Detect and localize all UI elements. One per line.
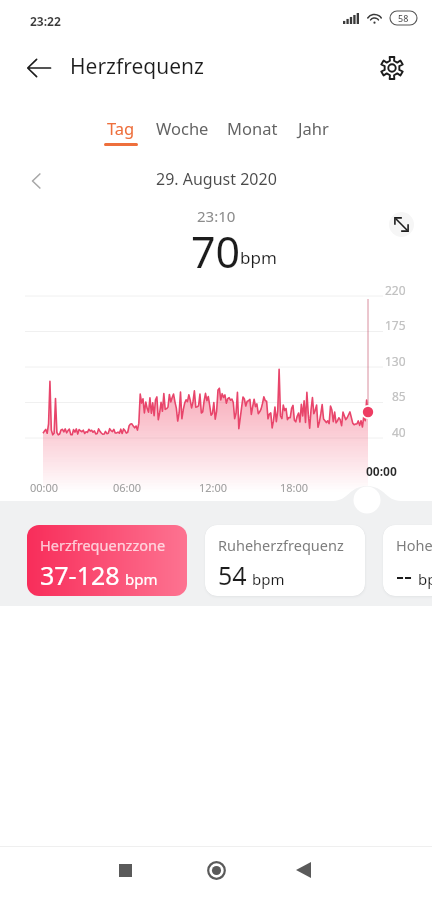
button[interactable]: Recents — [105, 850, 145, 890]
staticText: bpm — [240, 246, 277, 269]
button[interactable]: Monat — [221, 113, 284, 143]
button[interactable]: Herzfrequenzzone — [27, 525, 187, 596]
button[interactable]: Previous day — [22, 166, 52, 196]
button[interactable]: Back — [283, 850, 323, 890]
staticText: 70 — [191, 222, 241, 281]
button[interactable]: Expand chart — [389, 212, 414, 237]
staticText: Woche — [156, 117, 209, 139]
staticText: -- — [396, 558, 413, 592]
staticText: 54 — [218, 558, 247, 592]
staticText: 18:00 — [280, 480, 309, 495]
staticText: Ruheherzfrequenz — [218, 535, 344, 555]
staticText: 130 — [385, 353, 406, 369]
staticText: 29. August 2020 — [156, 168, 277, 190]
staticText: Herzfrequenzzone — [40, 535, 166, 555]
button[interactable]: Ruheherzfrequenz — [205, 525, 365, 596]
staticText: 58 — [398, 12, 409, 24]
button[interactable]: Home — [196, 850, 236, 890]
button[interactable]: Jahr — [290, 113, 337, 143]
button[interactable]: Settings — [372, 48, 412, 88]
staticText: Tag — [107, 117, 135, 139]
staticText: 12:00 — [199, 480, 228, 495]
staticText: Jahr — [298, 117, 329, 139]
button[interactable]: Hohe — [383, 525, 432, 596]
button[interactable]: Woche — [148, 113, 216, 143]
staticText: 23:22 — [30, 13, 61, 29]
staticText: 175 — [385, 317, 406, 333]
staticText: bp — [418, 569, 432, 589]
staticText: 220 — [385, 282, 406, 298]
staticText: Herzfrequenz — [70, 52, 204, 81]
staticText: Hohe — [396, 535, 432, 555]
staticText: 00:00 — [30, 480, 59, 495]
staticText: 06:00 — [113, 480, 142, 495]
staticText: 37-128 — [40, 558, 120, 592]
staticText: 40 — [392, 424, 406, 440]
staticText: Monat — [227, 117, 278, 139]
staticText: 23:10 — [197, 206, 236, 226]
button[interactable]: Back — [19, 48, 59, 88]
staticText: 85 — [392, 388, 406, 404]
staticText: 00:00 — [366, 463, 397, 479]
staticText: bpm — [252, 569, 285, 589]
button[interactable]: Tag — [98, 113, 144, 146]
staticText: bpm — [125, 569, 158, 589]
